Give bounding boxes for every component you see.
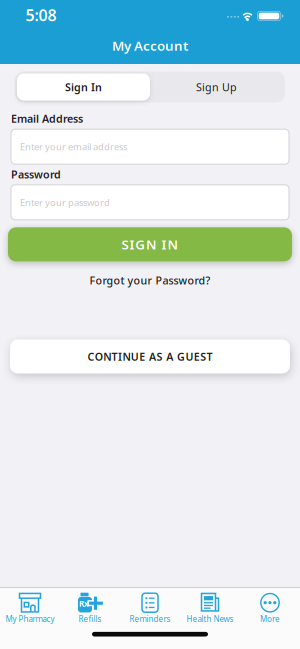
staticText: Sign In <box>65 80 102 94</box>
staticText: Reminders <box>129 614 170 624</box>
staticText: My Account <box>112 37 188 54</box>
button[interactable]: Reminders <box>120 593 180 624</box>
staticText: Rx <box>79 598 89 609</box>
staticText: CONTINUE AS A GUEST <box>87 349 213 364</box>
button[interactable]: My Pharmacy <box>0 593 60 624</box>
staticText: Forgot your Password? <box>89 273 210 287</box>
staticText: Sign Up <box>196 80 237 94</box>
button[interactable]: Sign In <box>17 73 150 100</box>
staticText: Password <box>11 167 61 181</box>
button[interactable]: Rx <box>60 593 120 624</box>
staticText: Enter your password <box>20 196 110 208</box>
staticText: Refills <box>78 614 101 624</box>
button[interactable]: Forgot your Password? <box>89 273 210 287</box>
button[interactable]: CONTINUE AS A GUEST <box>10 339 290 373</box>
staticText: 5:08 <box>25 4 56 26</box>
staticText: Health News <box>186 614 233 624</box>
button[interactable]: Sign Up <box>150 73 283 100</box>
button[interactable]: Enter your email address <box>11 129 289 164</box>
button[interactable]: More <box>240 593 300 624</box>
staticText: SIGN IN <box>122 235 178 253</box>
staticText: My Pharmacy <box>5 614 54 624</box>
button[interactable]: Enter your password <box>11 185 289 220</box>
staticText: Enter your email address <box>20 140 127 153</box>
staticText: Email Address <box>11 111 83 126</box>
button[interactable]: Health News <box>180 593 240 624</box>
staticText: More <box>260 614 280 624</box>
button[interactable]: SIGN IN <box>8 227 292 261</box>
